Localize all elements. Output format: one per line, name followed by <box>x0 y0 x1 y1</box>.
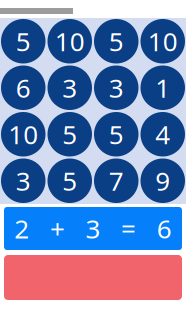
staticText: 6 <box>157 211 172 246</box>
staticText: 7 <box>109 163 124 198</box>
button[interactable]: 10 <box>139 18 186 64</box>
button[interactable]: 5 <box>0 18 46 64</box>
staticText: 5 <box>16 23 31 59</box>
button[interactable]: Clear <box>4 255 182 300</box>
button[interactable]: 6 <box>0 64 46 111</box>
staticText: 3 <box>16 163 31 198</box>
staticText: 3 <box>109 70 124 105</box>
staticText: 2 <box>14 211 29 246</box>
staticText: + <box>50 211 65 246</box>
staticText: = <box>121 211 136 246</box>
button[interactable]: 2 <box>4 207 182 250</box>
button[interactable]: 10 <box>0 111 46 157</box>
staticText: 9 <box>155 163 170 198</box>
button[interactable]: 3 <box>93 64 139 111</box>
button[interactable]: 5 <box>93 111 139 157</box>
staticText: 5 <box>109 116 124 152</box>
staticText: 3 <box>62 70 77 105</box>
staticText: 6 <box>16 70 31 105</box>
staticText: 3 <box>85 211 100 246</box>
button[interactable]: 5 <box>46 111 93 157</box>
staticText: 5 <box>62 163 77 198</box>
staticText: 1 <box>155 70 170 105</box>
staticText: 5 <box>109 23 124 59</box>
button[interactable]: 3 <box>46 64 93 111</box>
button[interactable]: 3 <box>0 157 46 204</box>
staticText: 10 <box>55 23 85 59</box>
button[interactable]: 1 <box>139 64 186 111</box>
staticText: 5 <box>62 116 77 152</box>
staticText: 4 <box>155 116 170 152</box>
button[interactable]: 10 <box>46 18 93 64</box>
staticText: 10 <box>148 23 178 59</box>
button[interactable]: 4 <box>139 111 186 157</box>
button[interactable]: 5 <box>46 157 93 204</box>
button[interactable]: 5 <box>93 18 139 64</box>
button[interactable]: 7 <box>93 157 139 204</box>
button[interactable]: 9 <box>139 157 186 204</box>
staticText: 10 <box>8 116 38 152</box>
